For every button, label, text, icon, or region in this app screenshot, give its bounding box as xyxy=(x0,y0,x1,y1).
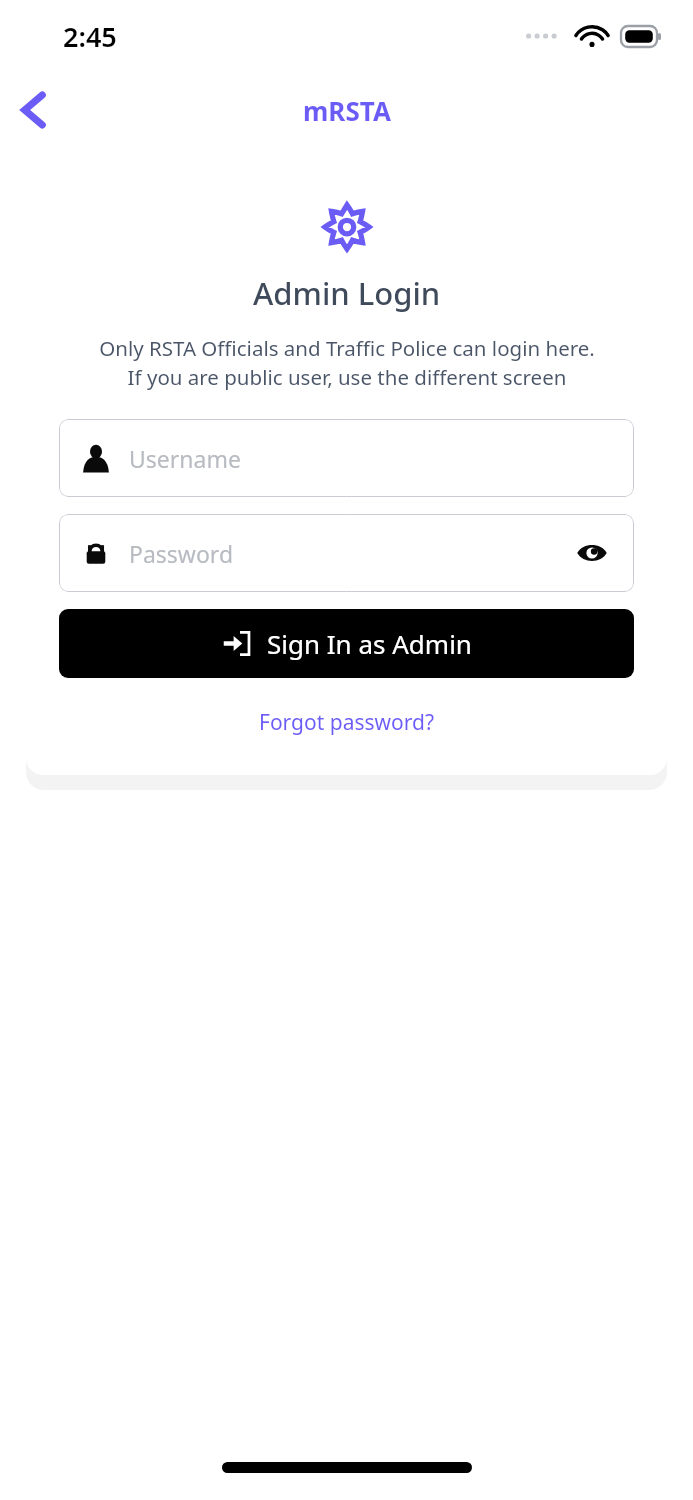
staticText: Sign In as Admin xyxy=(267,626,472,661)
button[interactable]: Forgot password? xyxy=(251,704,443,741)
staticText: mRSTA xyxy=(303,93,391,128)
staticText: Only RSTA Officials and Traffic Police c… xyxy=(99,334,595,391)
staticText: Password xyxy=(129,538,234,569)
staticText: 2:45 xyxy=(63,18,117,55)
button[interactable]: Show password xyxy=(572,533,612,573)
staticText: Forgot password? xyxy=(259,708,435,737)
button[interactable]: Back xyxy=(6,82,62,138)
button[interactable]: Sign In as Admin xyxy=(59,609,634,678)
staticText: Username xyxy=(129,443,241,474)
staticText: Admin Login xyxy=(253,272,441,314)
button[interactable]: Username xyxy=(59,419,634,497)
button[interactable]: Password xyxy=(59,514,634,592)
